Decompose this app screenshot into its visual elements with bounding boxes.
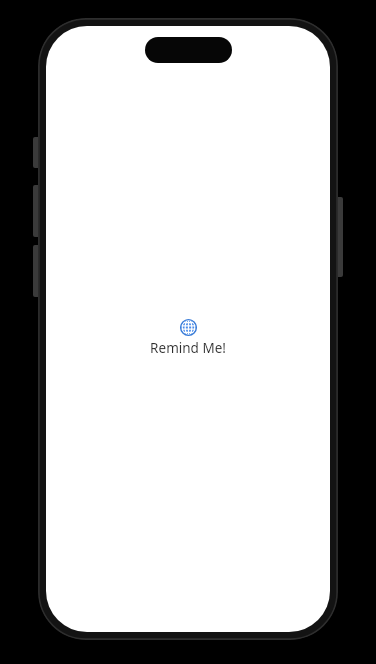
staticText: Remind Me! <box>150 339 226 357</box>
button[interactable]: Globe <box>142 317 234 359</box>
other: Globe <box>180 319 197 336</box>
